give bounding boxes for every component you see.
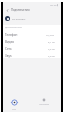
button[interactable]: Сеть — [3, 45, 61, 52]
staticText: 2,0 ГБ — [48, 54, 55, 57]
button[interactable]: Звук — [3, 52, 61, 59]
staticText: 8,1 ГБ — [48, 40, 55, 43]
button[interactable]: Видео — [3, 38, 61, 45]
staticText: 4,2 ГБ — [48, 47, 55, 50]
staticText: Доступные сети — [5, 26, 22, 29]
staticText: Подключения — [11, 8, 30, 12]
staticText: Сеть — [5, 47, 12, 51]
staticText: Настройки — [39, 103, 49, 106]
staticText: 4G ull ▮ — [50, 3, 59, 6]
button[interactable]: Настройки — [33, 94, 55, 114]
staticText: Видео — [5, 40, 15, 44]
staticText: Wi-Fi Direct — [12, 17, 26, 20]
staticText: Телефон — [5, 33, 18, 37]
button[interactable]: Телефон — [3, 31, 61, 38]
button[interactable]: Wi-Fi Direct — [3, 14, 61, 23]
staticText: Сеть — [12, 108, 17, 111]
staticText: 12,4 ГБ — [46, 33, 55, 36]
button[interactable]: Сеть — [3, 94, 25, 114]
staticText: Звук — [5, 54, 12, 58]
button[interactable]: Back — [3, 6, 11, 14]
